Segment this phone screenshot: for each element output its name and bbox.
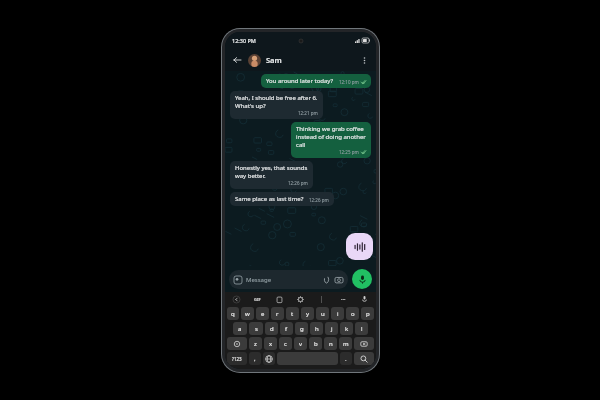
staticText: o — [351, 310, 355, 318]
button[interactable]: search — [354, 352, 374, 365]
staticText: Honestly yes, that sounds way better. — [235, 164, 308, 180]
button[interactable]: i — [331, 307, 344, 320]
staticText: h — [315, 325, 319, 333]
button[interactable]: ?123 — [227, 352, 247, 365]
button[interactable]: h — [310, 322, 323, 335]
button[interactable]: Thinking we grab coffee instead of doing… — [291, 122, 371, 158]
button[interactable]: ... — [338, 294, 349, 305]
button[interactable]: u — [316, 307, 329, 320]
staticText: d — [270, 325, 274, 333]
staticText: 12:25 pm — [339, 149, 359, 155]
staticText: Message — [246, 276, 323, 284]
button[interactable]: shift — [227, 337, 247, 350]
staticText: f — [285, 325, 288, 333]
button[interactable]: q — [227, 307, 239, 320]
staticText: 12:21 pm — [298, 110, 318, 116]
button[interactable]: n — [324, 337, 337, 350]
button[interactable] — [248, 54, 261, 67]
button[interactable]: < — [231, 294, 242, 305]
staticText: c — [284, 340, 287, 348]
button[interactable]: Honestly yes, that sounds way better. — [230, 161, 313, 189]
button[interactable]: Audio levels — [346, 233, 373, 260]
staticText: z — [254, 340, 257, 348]
button[interactable]: GIF — [252, 294, 263, 305]
staticText: Same place as last time? — [235, 195, 304, 203]
button[interactable]: , — [249, 352, 261, 365]
staticText: ••• — [341, 297, 346, 302]
button[interactable]: a — [233, 322, 247, 335]
button[interactable]: Back — [230, 53, 244, 67]
button[interactable]: s — [249, 322, 263, 335]
staticText: t — [291, 310, 294, 318]
staticText: You around later today? — [266, 77, 334, 85]
staticText: g — [300, 325, 304, 333]
staticText: n — [329, 340, 333, 348]
button[interactable]: More options — [357, 53, 371, 67]
staticText: , — [254, 355, 256, 363]
staticText: i — [337, 310, 339, 318]
button[interactable]: mic — [359, 294, 370, 305]
staticText: 12:26 pm — [288, 180, 308, 186]
staticText: b — [314, 340, 318, 348]
button[interactable]: v — [294, 337, 307, 350]
button[interactable]: del — [354, 337, 374, 350]
staticText: a — [238, 325, 242, 333]
button[interactable]: You around later today? — [261, 74, 371, 88]
button[interactable]: Record voice message — [352, 269, 372, 289]
button[interactable]: bar — [316, 294, 327, 305]
button[interactable]: r — [271, 307, 284, 320]
staticText: . — [345, 355, 347, 363]
button[interactable]: m — [339, 337, 352, 350]
staticText: 12:26 pm — [309, 197, 329, 203]
staticText: k — [345, 325, 349, 333]
button[interactable]: e — [256, 307, 269, 320]
staticText: 12:10 pm — [339, 79, 359, 85]
staticText: y — [306, 310, 310, 318]
other: Camera — [335, 276, 343, 284]
staticText: Yeah, I should be free after 6. What's u… — [235, 94, 318, 110]
button[interactable]: clip — [274, 294, 285, 305]
button[interactable]: Message — [229, 270, 348, 289]
staticText: s — [255, 325, 258, 333]
staticText: e — [261, 310, 265, 318]
staticText: ?123 — [232, 356, 242, 362]
staticText: x — [269, 340, 273, 348]
button[interactable]: x — [264, 337, 277, 350]
button[interactable]: g — [295, 322, 308, 335]
button[interactable]: k — [340, 322, 353, 335]
staticText: 12:30 PM — [232, 37, 256, 44]
button[interactable]: d — [265, 322, 278, 335]
staticText: q — [231, 310, 235, 318]
button[interactable]: y — [301, 307, 314, 320]
button[interactable]: p — [361, 307, 374, 320]
other: Attach — [323, 276, 330, 283]
button[interactable]: Sam — [266, 55, 357, 65]
button[interactable]: f — [280, 322, 293, 335]
staticText: m — [343, 340, 349, 348]
button[interactable]: j — [325, 322, 338, 335]
staticText: GIF — [254, 297, 261, 302]
staticText: v — [299, 340, 303, 348]
button[interactable]: b — [309, 337, 322, 350]
button[interactable]: w — [241, 307, 254, 320]
staticText: u — [321, 310, 325, 318]
button[interactable]: t — [286, 307, 299, 320]
staticText: w — [245, 310, 250, 318]
button[interactable]: globe — [263, 352, 275, 365]
button[interactable]: z — [249, 337, 262, 350]
button[interactable]: Same place as last time? — [230, 192, 334, 206]
button[interactable]: gear — [295, 294, 306, 305]
button[interactable]: o — [346, 307, 359, 320]
staticText: j — [331, 325, 333, 333]
staticText: l — [361, 325, 363, 333]
button[interactable]: Yeah, I should be free after 6. What's u… — [230, 91, 323, 119]
staticText: Thinking we grab coffee instead of doing… — [296, 125, 366, 149]
button[interactable]: l — [355, 322, 368, 335]
button[interactable]: c — [279, 337, 292, 350]
staticText: p — [366, 310, 370, 318]
staticText: r — [276, 310, 279, 318]
button[interactable]: . — [340, 352, 352, 365]
